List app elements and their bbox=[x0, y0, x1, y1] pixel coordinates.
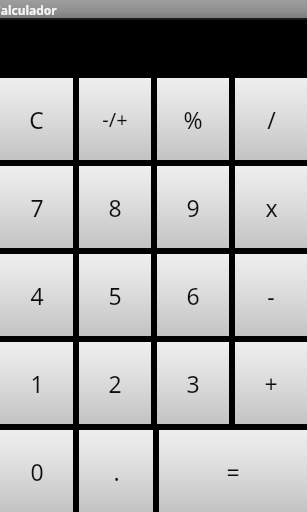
button[interactable]: 6 bbox=[157, 254, 229, 336]
button[interactable]: 5 bbox=[79, 254, 151, 336]
staticText: 9 bbox=[186, 192, 200, 223]
button[interactable]: 1 bbox=[0, 342, 73, 424]
staticText: = bbox=[226, 456, 240, 487]
staticText: / bbox=[267, 104, 276, 135]
button[interactable]: . bbox=[79, 430, 153, 512]
button[interactable]: 4 bbox=[0, 254, 73, 336]
staticText: 6 bbox=[186, 280, 200, 311]
staticText: % bbox=[183, 104, 203, 135]
staticText: - bbox=[267, 280, 275, 311]
button[interactable]: - bbox=[235, 254, 307, 336]
button[interactable]: x bbox=[235, 166, 307, 248]
staticText: C bbox=[29, 104, 44, 135]
button[interactable]: = bbox=[159, 430, 307, 512]
button[interactable]: 7 bbox=[0, 166, 73, 248]
staticText: . bbox=[113, 456, 120, 487]
staticText: x bbox=[265, 192, 278, 223]
button[interactable]: 3 bbox=[157, 342, 229, 424]
button[interactable]: 8 bbox=[79, 166, 151, 248]
staticText: 5 bbox=[108, 280, 122, 311]
staticText: 4 bbox=[30, 280, 44, 311]
staticText: -/+ bbox=[102, 106, 128, 133]
button[interactable]: % bbox=[157, 78, 229, 160]
button[interactable]: C bbox=[0, 78, 73, 160]
staticText: + bbox=[264, 368, 278, 399]
staticText: 0 bbox=[30, 456, 44, 487]
button[interactable]: -/+ bbox=[79, 78, 151, 160]
staticText: Calculador bbox=[0, 2, 57, 18]
button[interactable]: + bbox=[235, 342, 307, 424]
staticText: 7 bbox=[30, 192, 44, 223]
staticText: 8 bbox=[108, 192, 122, 223]
button[interactable]: 2 bbox=[79, 342, 151, 424]
button[interactable]: 0 bbox=[0, 430, 73, 512]
staticText: 1 bbox=[30, 368, 44, 399]
staticText: 3 bbox=[186, 368, 200, 399]
staticText: 2 bbox=[108, 368, 122, 399]
button[interactable]: / bbox=[235, 78, 307, 160]
button[interactable]: 9 bbox=[157, 166, 229, 248]
